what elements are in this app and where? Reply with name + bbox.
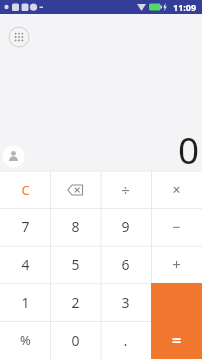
button[interactable]: 9 xyxy=(100,208,151,245)
staticText: × xyxy=(172,180,181,199)
button[interactable]: + xyxy=(151,245,202,283)
staticText: ÷ xyxy=(121,180,130,200)
staticText: 7 xyxy=(21,217,30,236)
staticText: 3 xyxy=(121,293,130,312)
staticText: 8 xyxy=(71,217,80,236)
staticText: % xyxy=(20,331,31,349)
staticText: C xyxy=(21,181,30,199)
button[interactable]: 8 xyxy=(50,208,100,245)
button[interactable]: 1 xyxy=(0,283,50,321)
button[interactable]: . xyxy=(100,321,151,359)
staticText: 0 xyxy=(71,331,80,350)
staticText: 4 xyxy=(21,255,30,274)
staticText: 5 xyxy=(71,255,80,274)
staticText: 1 xyxy=(21,293,30,312)
staticText: 9 xyxy=(121,217,130,236)
button[interactable] xyxy=(50,171,100,208)
button[interactable]: 7 xyxy=(0,208,50,245)
button[interactable]: C xyxy=(0,171,50,208)
button[interactable]: 3 xyxy=(100,283,151,321)
button[interactable]: 4 xyxy=(0,245,50,283)
button[interactable]: % xyxy=(0,321,50,359)
staticText: 0 xyxy=(178,124,200,174)
staticText: . xyxy=(123,330,128,350)
staticText: − xyxy=(172,217,181,236)
staticText: = xyxy=(172,329,182,351)
button[interactable]: × xyxy=(151,171,202,208)
staticText: 2 xyxy=(71,293,80,312)
button[interactable]: ÷ xyxy=(100,171,151,208)
button[interactable]: 6 xyxy=(100,245,151,283)
button[interactable]: 2 xyxy=(50,283,100,321)
button[interactable]: 0 xyxy=(50,321,100,359)
staticText: + xyxy=(172,254,181,274)
button[interactable]: − xyxy=(151,208,202,245)
button[interactable] xyxy=(8,26,30,48)
button[interactable]: = xyxy=(151,321,202,359)
button[interactable]: 5 xyxy=(50,245,100,283)
staticText: 6 xyxy=(121,255,130,274)
staticText: 11:09 xyxy=(173,1,197,13)
